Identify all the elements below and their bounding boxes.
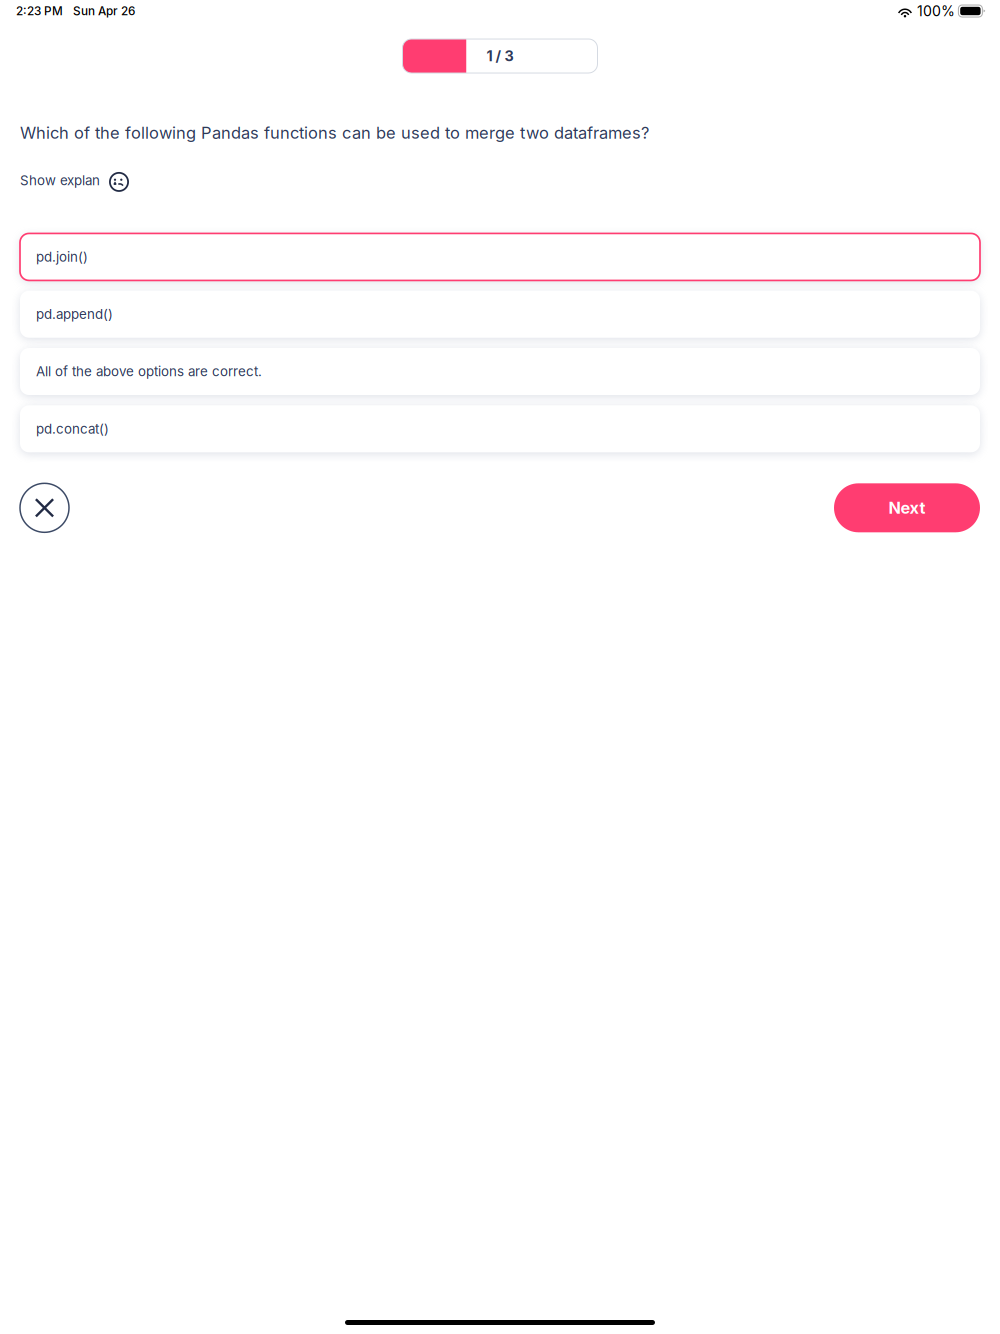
staticText: pd.concat() [36, 421, 109, 437]
button[interactable]: pd.concat() [20, 405, 980, 452]
staticText: Which of the following Pandas functions … [20, 123, 649, 142]
staticText: Next [888, 498, 925, 517]
button[interactable]: All of the above options are correct. [20, 348, 980, 395]
button[interactable]: Show explan [0, 142, 1000, 190]
staticText: 1 / 3 [486, 47, 513, 64]
button[interactable]: Close [20, 483, 69, 532]
staticText: Show explan [20, 173, 100, 188]
button[interactable]: Next [834, 483, 980, 532]
staticText: pd.append() [36, 306, 113, 322]
staticText: 2:23 PM [16, 4, 63, 18]
staticText: 100% [917, 3, 955, 19]
button[interactable]: pd.join() [20, 233, 980, 280]
staticText: pd.join() [36, 249, 88, 265]
button[interactable]: pd.append() [20, 291, 980, 338]
staticText: All of the above options are correct. [36, 364, 262, 379]
staticText: Sun Apr 26 [73, 4, 135, 18]
